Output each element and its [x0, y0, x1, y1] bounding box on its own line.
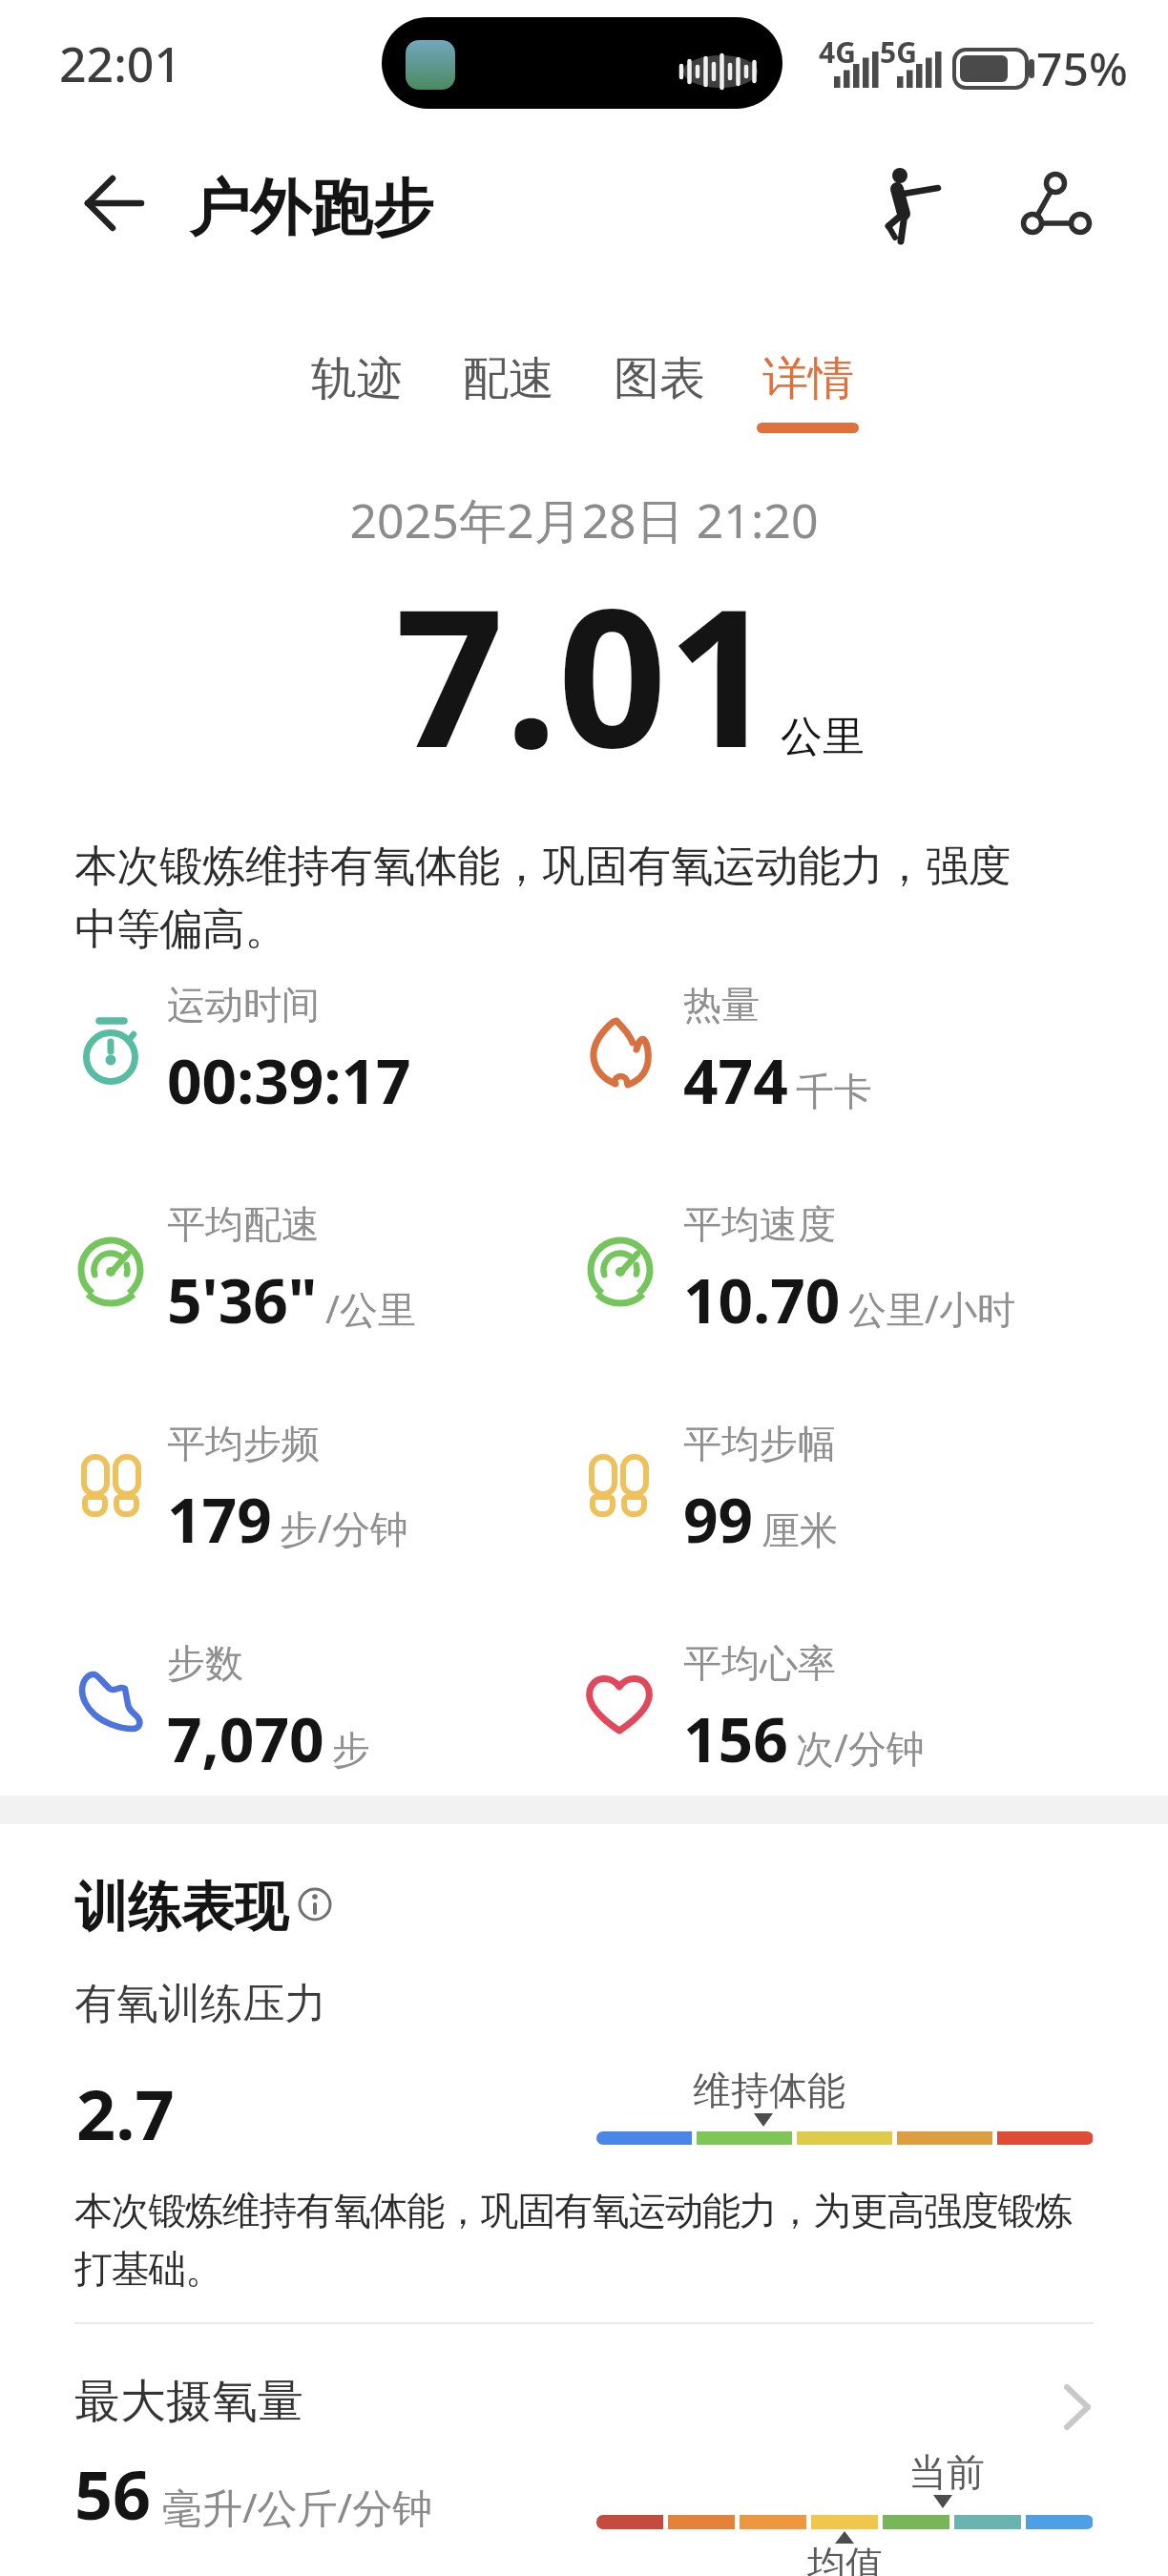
staticText: /公里: [325, 1282, 416, 1335]
staticText: 22:01: [59, 31, 181, 96]
staticText: 公里/小时: [848, 1282, 1015, 1335]
staticText: 当前: [908, 2448, 985, 2496]
staticText: 训练表现: [74, 1874, 288, 1942]
staticText: 00:39:17: [167, 1039, 411, 1122]
staticText: 本次锻炼维持有氧体能，巩固有氧运动能力，强度 中等偏高。: [74, 840, 1168, 957]
staticText: 有氧训练压力: [74, 1978, 326, 2030]
staticText: 平均步频: [167, 1420, 320, 1467]
staticText: 7.01: [395, 543, 777, 802]
staticText: 本次锻炼维持有氧体能，巩固有氧运动能力，为更高强度锻炼 打基础。: [74, 2187, 1168, 2294]
staticText: 运动时间: [167, 981, 320, 1028]
staticText: 步/分钟: [280, 1502, 408, 1554]
staticText: 户外跑步: [189, 170, 433, 247]
button[interactable]: [57, 2347, 1111, 2442]
staticText: 56: [74, 2448, 152, 2539]
staticText: 轨迹: [311, 350, 403, 407]
staticText: 10.70: [683, 1258, 841, 1341]
staticText: 步数: [167, 1639, 243, 1687]
staticText: 474: [683, 1039, 788, 1122]
staticText: 详情: [762, 350, 854, 407]
staticText: 图表: [614, 350, 705, 407]
button[interactable]: [747, 334, 869, 437]
button[interactable]: [286, 1876, 344, 1933]
staticText: 维持体能: [693, 2067, 845, 2114]
staticText: 7,070: [167, 1697, 324, 1780]
staticText: 均值: [807, 2541, 884, 2576]
staticText: 步: [332, 1726, 370, 1774]
staticText: 千卡: [796, 1068, 872, 1115]
staticText: 2025年2月28日 21:20: [0, 488, 1168, 552]
button[interactable]: [598, 334, 720, 437]
button[interactable]: [67, 167, 148, 243]
staticText: 平均速度: [683, 1200, 836, 1248]
button[interactable]: [296, 334, 418, 437]
staticText: 75%: [1036, 37, 1128, 99]
button[interactable]: [1002, 153, 1102, 243]
staticText: 平均步幅: [683, 1420, 836, 1467]
staticText: 热量: [683, 981, 760, 1028]
staticText: 2.7: [76, 2067, 175, 2160]
staticText: 公里: [781, 711, 865, 763]
staticText: 最大摄氧量: [74, 2373, 303, 2430]
button[interactable]: [864, 153, 954, 248]
staticText: 5'36": [167, 1258, 318, 1341]
staticText: 毫升/公斤/分钟: [162, 2480, 433, 2534]
staticText: 5G: [880, 32, 917, 72]
staticText: 配速: [463, 350, 554, 407]
button[interactable]: [447, 334, 569, 437]
staticText: 平均配速: [167, 1200, 320, 1248]
staticText: 次/分钟: [796, 1721, 925, 1774]
staticText: 厘米: [761, 1506, 838, 1554]
staticText: 平均心率: [683, 1639, 836, 1687]
staticText: 179: [167, 1478, 272, 1561]
staticText: 99: [683, 1478, 754, 1561]
staticText: 4G: [819, 32, 856, 72]
staticText: 156: [683, 1697, 788, 1780]
